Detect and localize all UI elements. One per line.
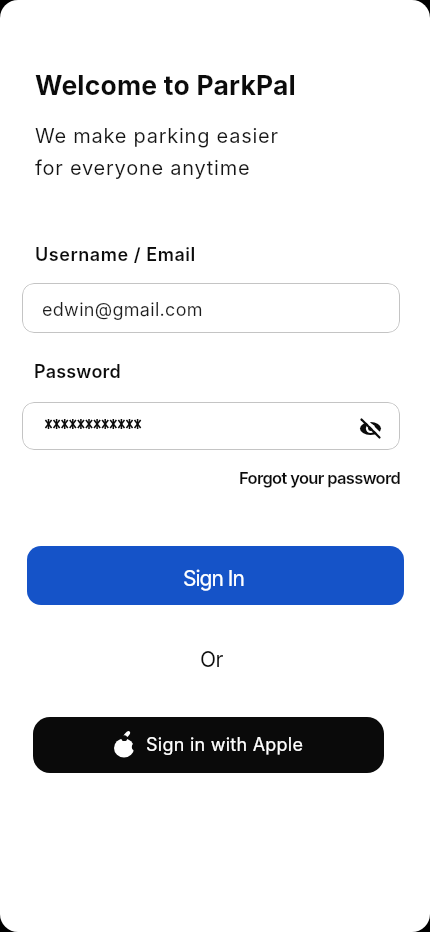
staticText: Or	[200, 647, 223, 672]
staticText: Username / Email	[35, 244, 196, 266]
staticText: Sign In	[183, 566, 244, 591]
button[interactable]	[22, 402, 400, 450]
button[interactable]: Forgot your password	[239, 468, 401, 488]
staticText: Sign in with Apple	[146, 734, 304, 756]
staticText: edwin@gmail.com	[42, 299, 203, 321]
button[interactable]: Sign In	[27, 546, 404, 605]
button[interactable]: edwin@gmail.com	[22, 283, 400, 333]
staticText: Welcome to ParkPal	[35, 69, 297, 101]
staticText: We make parking easier for everyone anyt…	[35, 124, 279, 180]
staticText: Password	[34, 361, 121, 383]
button[interactable]: Sign in with Apple	[33, 717, 384, 773]
